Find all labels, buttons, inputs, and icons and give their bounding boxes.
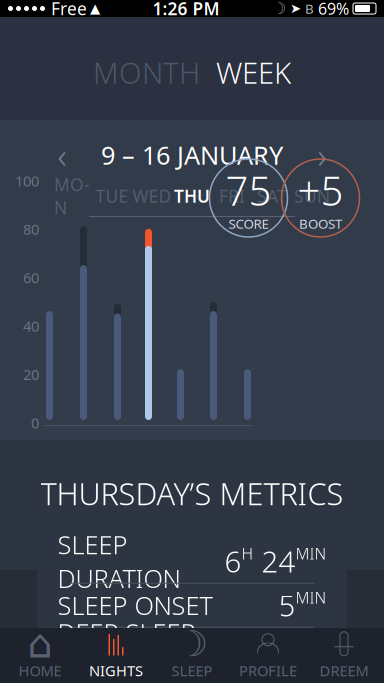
staticText: 69% — [318, 0, 349, 19]
staticText: SLEEP DURATION — [57, 528, 180, 595]
staticText: 80 — [23, 219, 39, 239]
button[interactable]: DREEM — [306, 628, 382, 683]
button[interactable]: Previous week — [42, 138, 82, 172]
staticText: ▲ — [90, 1, 100, 16]
staticText: ⌂ — [27, 621, 52, 666]
staticText: +5 — [297, 164, 343, 217]
staticText: 0 — [31, 413, 39, 432]
button[interactable]: PROFILE — [230, 628, 306, 683]
staticText: Free — [51, 0, 87, 20]
staticText: 6 — [224, 542, 241, 581]
button[interactable]: WEEK — [216, 47, 291, 98]
button[interactable]: WED — [132, 186, 172, 206]
staticText: BOOST — [299, 215, 342, 232]
staticText: + 5% — [260, 630, 326, 669]
button[interactable]: ⌂ — [2, 628, 78, 683]
staticText: SAT — [257, 184, 287, 207]
staticText: 5 — [278, 586, 295, 625]
button[interactable]: THU — [172, 186, 212, 206]
staticText: MIN — [295, 587, 326, 608]
button[interactable]: NIGHTS — [78, 628, 154, 683]
staticText: MON — [54, 173, 90, 219]
staticText: FRI — [219, 184, 245, 207]
staticText: ‹ — [57, 132, 66, 178]
staticText: B — [305, 0, 314, 17]
staticText: 75 — [225, 164, 271, 217]
staticText: PROFILE — [239, 661, 297, 680]
button[interactable]: TUE — [92, 186, 132, 206]
staticText: SCORE — [228, 215, 268, 232]
staticText: TUE — [95, 184, 128, 207]
button[interactable]: SUN — [292, 186, 332, 206]
button[interactable]: SAT — [252, 186, 292, 206]
button[interactable]: FRI — [212, 186, 252, 206]
button[interactable]: Next week — [302, 138, 342, 172]
staticText: WED — [132, 184, 171, 207]
staticText: DEEP SLEEP STIMULATION — [57, 616, 217, 683]
button[interactable]: MON — [52, 186, 92, 206]
staticText: SLEEP — [171, 661, 212, 680]
staticText: ☽ — [272, 0, 286, 18]
staticText: SUN — [294, 184, 330, 207]
staticText: H — [241, 543, 253, 564]
staticText: 20 — [23, 365, 39, 384]
staticText: › — [317, 132, 326, 178]
staticText: HOME — [18, 661, 61, 680]
staticText: NIGHTS — [89, 661, 143, 680]
staticText: SLEEP ONSET — [57, 588, 212, 622]
staticText: 40 — [23, 316, 39, 336]
staticText: THU — [174, 184, 210, 207]
button[interactable]: MONTH — [93, 47, 200, 98]
staticText: 1:26 PM — [152, 0, 219, 20]
staticText: ☽ — [176, 623, 208, 664]
staticText: THURSDAY’S METRICS — [40, 473, 343, 514]
staticText: ➤ — [290, 1, 301, 16]
staticText: DREEM — [319, 661, 368, 680]
staticText: 24 — [253, 542, 295, 581]
staticText: MIN — [295, 543, 326, 564]
button[interactable]: ☽ — [154, 628, 230, 683]
staticText: 100 — [15, 171, 39, 190]
staticText: MONTH — [93, 53, 200, 92]
staticText: WEEK — [216, 53, 291, 92]
staticText: 60 — [23, 268, 39, 287]
staticText: 9 – 16 JANUARY — [101, 138, 283, 172]
